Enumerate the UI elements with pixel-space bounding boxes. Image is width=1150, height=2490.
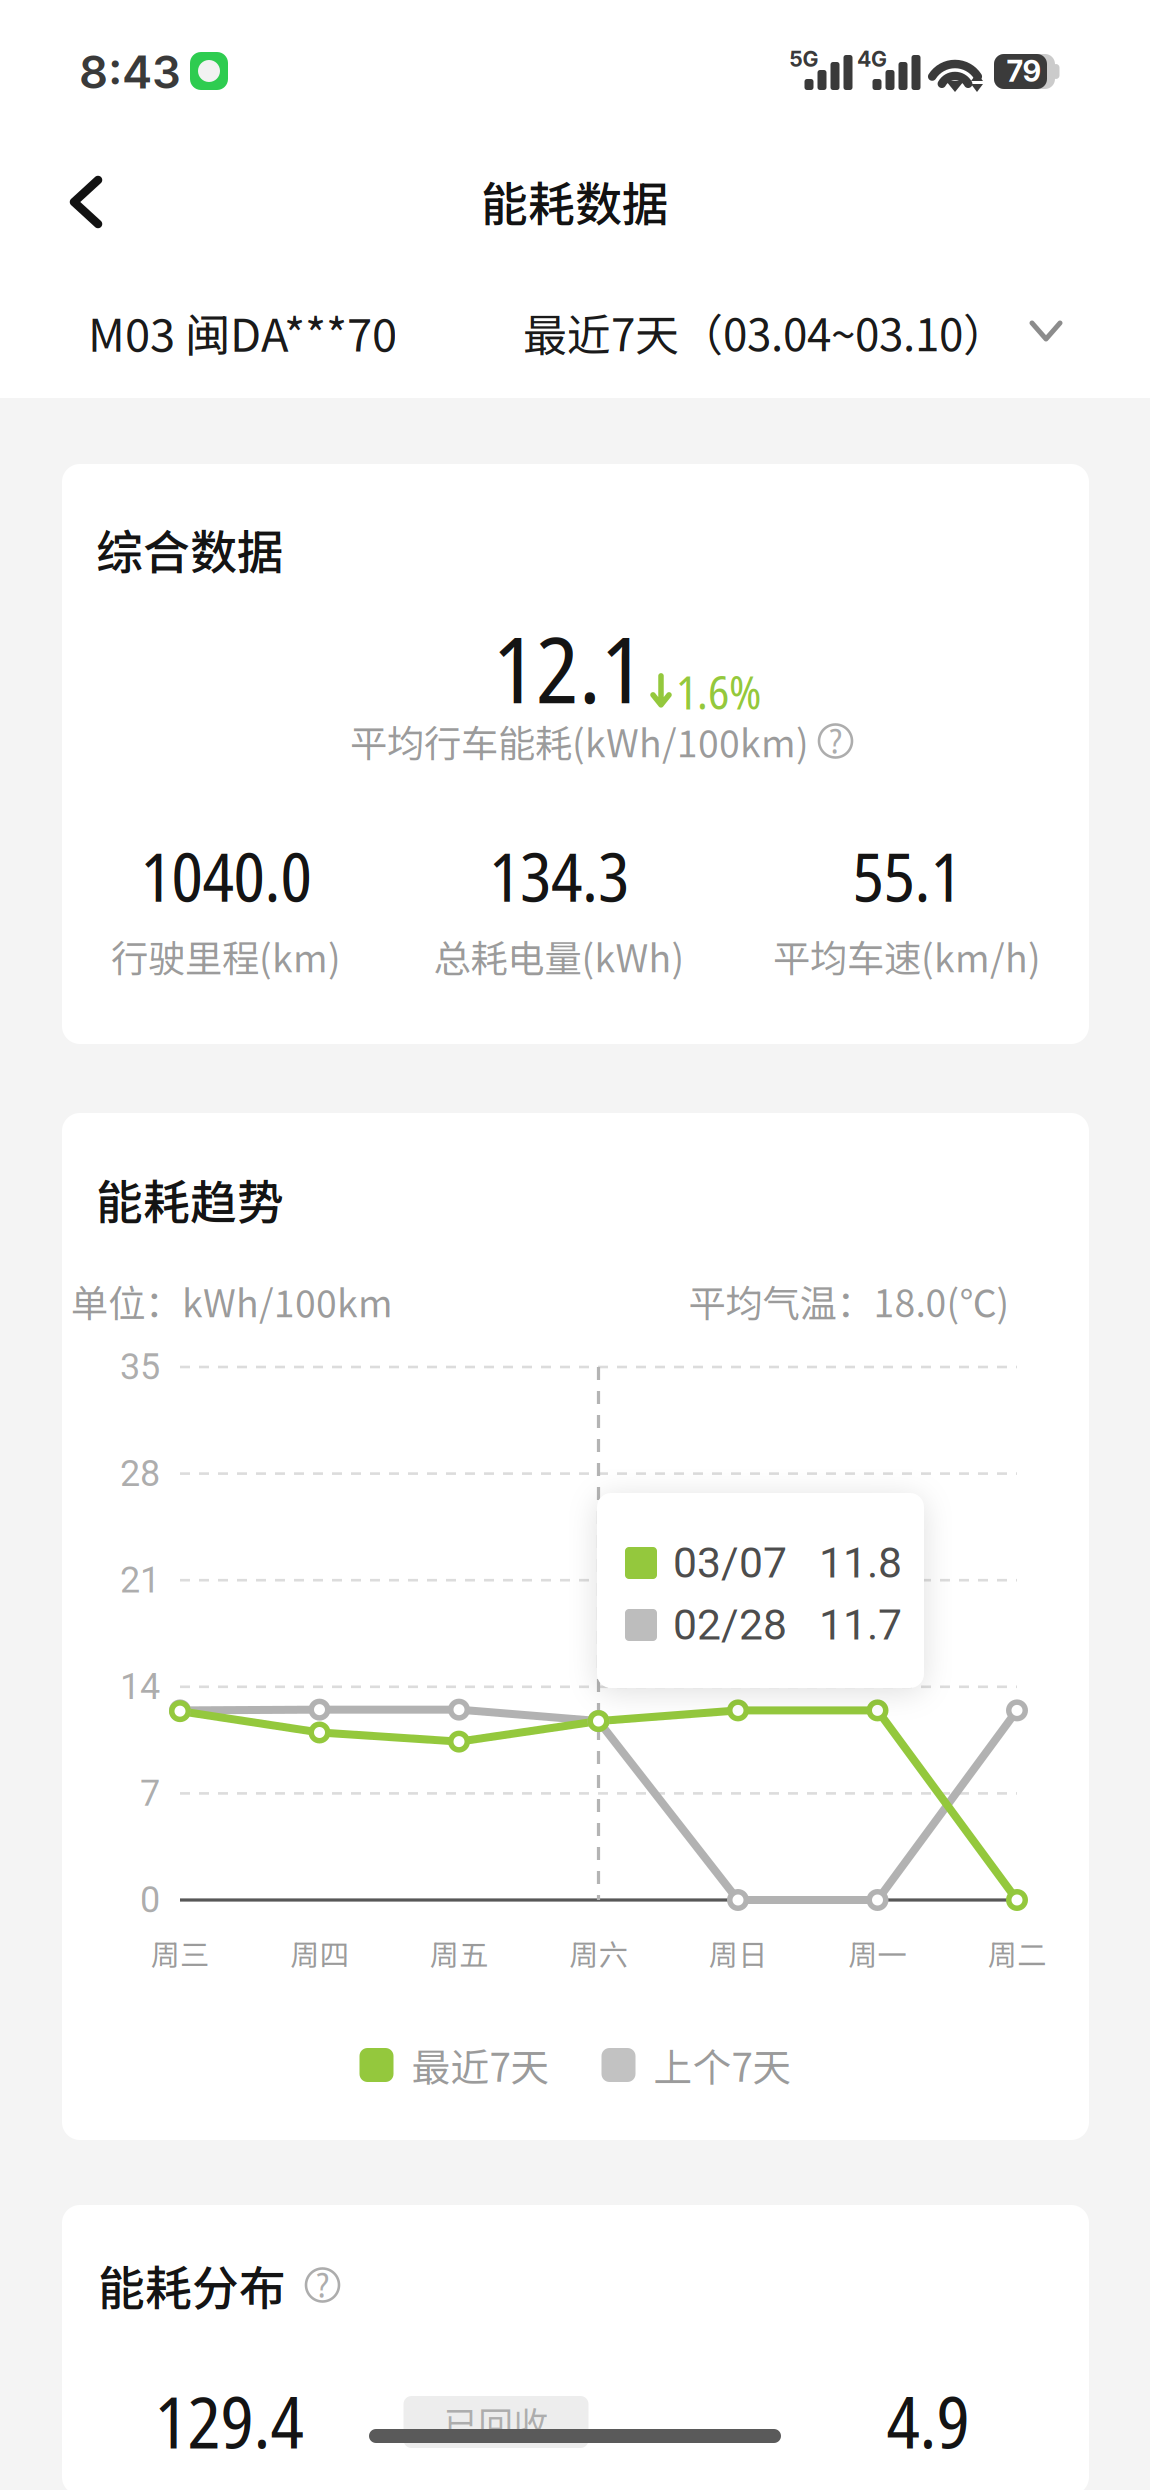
staticText: 行驶里程(km) <box>111 929 341 983</box>
staticText: 35 <box>120 1346 160 1388</box>
button[interactable]: 最近7天（03.04~03.10） <box>530 286 1056 378</box>
staticText: 综合数据 <box>96 515 284 583</box>
staticText: ? <box>316 2260 328 2308</box>
staticText: 平均车速(km/h) <box>773 929 1041 983</box>
staticText: 最近7天（03.04~03.10） <box>523 300 1007 364</box>
staticText: 上个7天 <box>653 2037 791 2093</box>
button[interactable]: M03 闽DA***70 <box>88 286 488 378</box>
staticText: 周五 <box>430 1932 488 1974</box>
staticText: 能耗趋势 <box>96 1165 284 1233</box>
staticText: 02/28 <box>673 1600 787 1650</box>
staticText: 最近7天 <box>411 2037 549 2093</box>
button[interactable]: Back <box>26 150 146 254</box>
staticText: 79 <box>1006 53 1041 89</box>
staticText: 周二 <box>988 1932 1046 1974</box>
staticText: ? <box>829 716 841 764</box>
staticText: 1040.0 <box>140 831 311 921</box>
staticText: 134.3 <box>489 831 629 921</box>
staticText: 已回收 <box>443 2397 548 2447</box>
staticText: 平均行车能耗(kWh/100km) <box>350 714 809 768</box>
staticText: 7 <box>140 1772 160 1814</box>
staticText: 21 <box>120 1559 160 1601</box>
staticText: 11.7 <box>819 1600 902 1650</box>
staticText: 0 <box>140 1879 160 1921</box>
staticText: 能耗分布 <box>98 2251 286 2319</box>
staticText: 28 <box>120 1452 160 1495</box>
staticText: 4.9 <box>886 2373 969 2469</box>
staticText: 单位：kWh/100km <box>71 1274 393 1328</box>
staticText: 平均气温：18.0(℃) <box>688 1274 1009 1328</box>
staticText: 周日 <box>709 1932 767 1974</box>
staticText: 1.6% <box>676 661 761 723</box>
staticText: 5G <box>789 46 818 72</box>
staticText: 11.8 <box>819 1538 902 1588</box>
staticText: 周一 <box>848 1932 906 1974</box>
staticText: 4G <box>857 46 887 72</box>
staticText: 55.1 <box>852 831 961 921</box>
staticText: 周三 <box>151 1932 209 1974</box>
staticText: 总耗电量(kWh) <box>433 929 684 983</box>
staticText: 129.4 <box>154 2373 303 2469</box>
staticText: M03 闽DA***70 <box>88 299 397 365</box>
staticText: 周六 <box>569 1932 627 1974</box>
staticText: 8:43 <box>79 45 181 99</box>
staticText: 12.1 <box>493 606 644 730</box>
staticText: 03/07 <box>673 1538 787 1588</box>
staticText: 周四 <box>290 1932 348 1974</box>
staticText: 14 <box>120 1666 160 1708</box>
staticText: 能耗数据 <box>481 167 669 235</box>
